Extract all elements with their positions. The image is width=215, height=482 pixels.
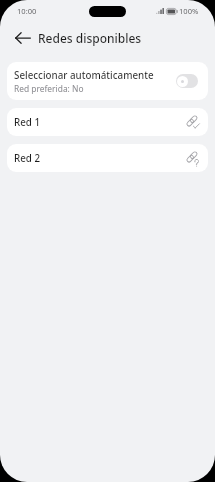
other: Desconocido: [186, 151, 200, 165]
staticText: Red 2: [14, 152, 41, 165]
staticText: 100%: [179, 6, 199, 16]
staticText: 10:00: [17, 6, 37, 16]
staticText: Seleccionar automáticamente: [14, 69, 154, 82]
button[interactable]: Back: [8, 23, 37, 52]
staticText: Red preferida: No: [14, 83, 84, 94]
button[interactable]: Seleccionar automáticamente: [176, 74, 198, 88]
other: Conectado: [186, 115, 200, 129]
staticText: Red 1: [14, 116, 41, 129]
button[interactable]: Red 2: [7, 144, 208, 172]
button[interactable]: Seleccionar automáticamente: [7, 62, 208, 100]
button[interactable]: Red 1: [7, 108, 208, 136]
staticText: Redes disponibles: [38, 30, 142, 46]
